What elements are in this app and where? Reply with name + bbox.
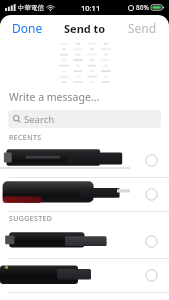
staticText: Write a message...: [9, 90, 100, 104]
staticText: RECENTS: [9, 133, 42, 143]
staticText: Search: [24, 113, 55, 126]
button[interactable]: Write a message...: [0, 87, 169, 107]
staticText: Send: [128, 20, 157, 36]
button[interactable]: Send: [124, 16, 161, 40]
other: Select photo: [145, 269, 158, 282]
staticText: SUGGESTED: [9, 214, 53, 224]
other: Select photo: [145, 154, 158, 167]
button[interactable]: Done: [8, 16, 47, 40]
other: Select photo: [145, 235, 158, 248]
button[interactable]: Select photo: [0, 259, 169, 293]
staticText: 86%: [136, 3, 149, 12]
staticText: 中華電信: [18, 4, 44, 12]
button[interactable]: Search: [8, 110, 161, 128]
button[interactable]: Select photo: [0, 225, 169, 259]
other: Select photo: [145, 188, 158, 201]
button[interactable]: Select photo: [0, 144, 169, 178]
staticText: Send to: [64, 21, 106, 36]
button[interactable]: Select photo: [0, 178, 169, 212]
staticText: 10:11: [81, 3, 101, 13]
staticText: Done: [12, 20, 43, 36]
